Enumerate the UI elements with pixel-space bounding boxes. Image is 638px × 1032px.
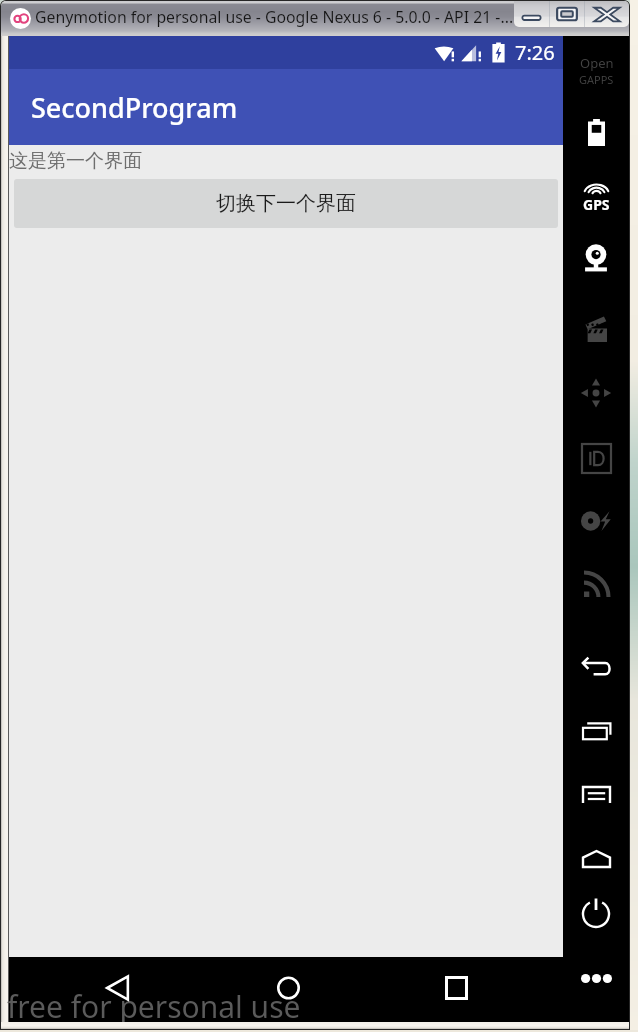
button[interactable]: Open GAPPS	[579, 54, 614, 87]
button[interactable]: Recents	[570, 709, 622, 751]
staticText: free for personal use	[7, 986, 301, 1027]
button[interactable]: Record video	[570, 308, 622, 350]
button[interactable]: Maximize	[550, 1, 584, 27]
staticText: 这是第一个界面	[9, 149, 142, 173]
button[interactable]: Power state	[570, 500, 622, 542]
button[interactable]: Minimize	[514, 1, 549, 27]
staticText: SecondProgram	[31, 89, 238, 126]
button[interactable]: More	[570, 957, 622, 999]
button[interactable]: Back	[570, 645, 622, 687]
button[interactable]: Identifiers	[570, 437, 622, 479]
staticText: Open	[580, 54, 614, 72]
button[interactable]: D-pad	[570, 372, 622, 414]
button[interactable]: Power	[570, 892, 622, 934]
button[interactable]: Battery	[570, 111, 622, 153]
button[interactable]: GPS	[570, 184, 622, 218]
button[interactable]: Camera	[570, 236, 622, 278]
button[interactable]: Back	[95, 964, 139, 1012]
button[interactable]: Recents	[434, 964, 478, 1012]
staticText: 7:26	[515, 39, 555, 66]
button[interactable]: Menu	[570, 773, 622, 815]
staticText: Genymotion for personal use - Google Nex…	[35, 6, 514, 28]
staticText: GPS	[583, 195, 610, 214]
button[interactable]: 切换下一个界面	[14, 179, 558, 228]
button[interactable]: Home	[266, 964, 310, 1012]
staticText: 切换下一个界面	[216, 191, 356, 216]
staticText: GAPPS	[579, 72, 614, 87]
button[interactable]: Network	[570, 563, 622, 605]
button[interactable]: Home	[570, 838, 622, 880]
button[interactable]: Close	[585, 1, 629, 27]
